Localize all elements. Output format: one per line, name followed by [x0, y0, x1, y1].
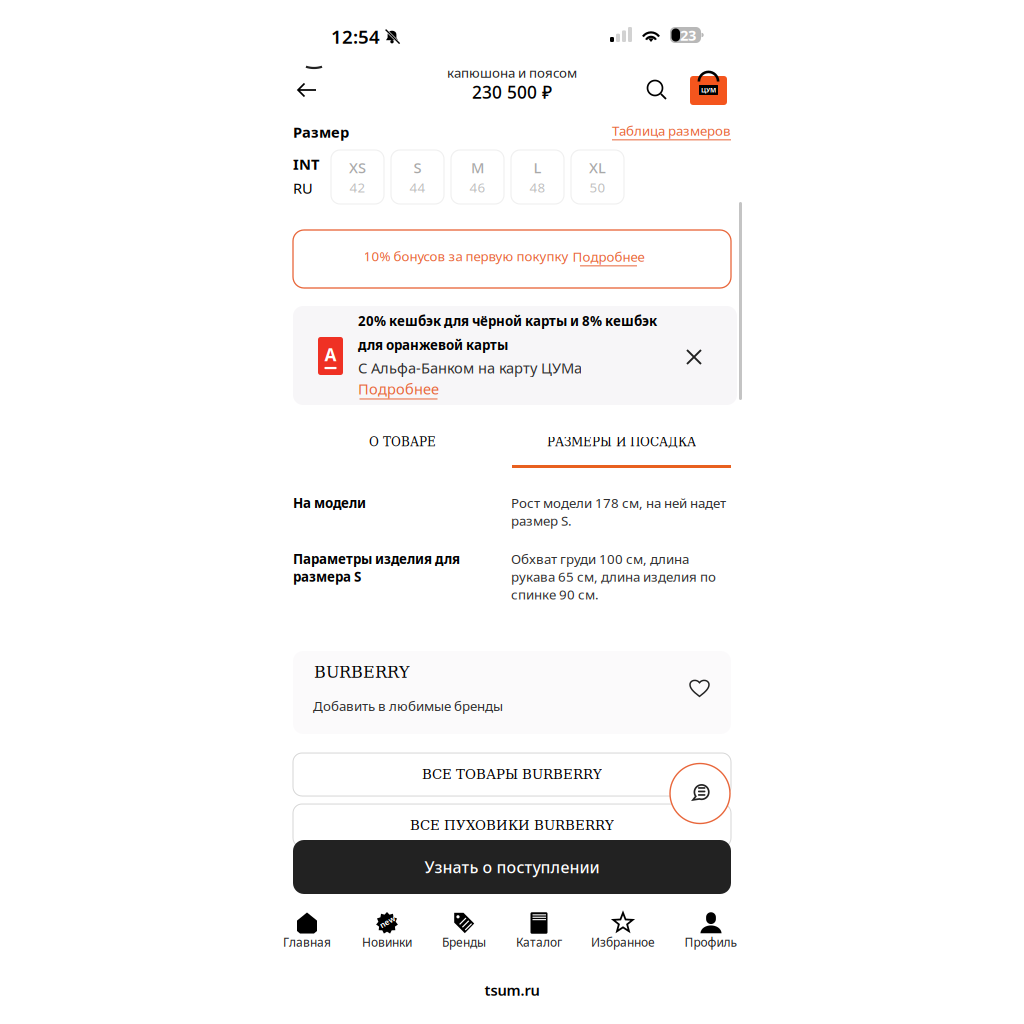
button[interactable]: Профиль — [671, 912, 751, 954]
staticText: 50 — [589, 178, 605, 196]
button[interactable]: Подробнее — [358, 379, 439, 399]
button[interactable]: Close banner — [676, 339, 712, 375]
staticText: Таблица размеров — [612, 122, 731, 139]
staticText: 12:54 — [331, 24, 380, 49]
button[interactable]: РАЗМЕРЫ И ПОСАДКА — [512, 425, 731, 459]
staticText: 230 500 ₽ — [472, 80, 552, 103]
staticText: Размер — [293, 122, 349, 142]
staticText: 46 — [469, 178, 485, 196]
button[interactable]: Back — [285, 72, 329, 108]
staticText: 48 — [529, 178, 545, 196]
staticText: капюшона и поясом — [447, 64, 577, 81]
button[interactable]: Узнать о поступлении — [293, 840, 731, 894]
staticText: INT — [293, 154, 319, 174]
button[interactable]: ВСЕ ТОВАРЫ BURBERRY — [293, 753, 731, 796]
button[interactable]: BURBERRY — [293, 651, 731, 734]
staticText: 44 — [409, 178, 425, 196]
staticText: О ТОВАРЕ — [369, 435, 436, 449]
staticText: 23 — [680, 25, 696, 45]
button[interactable]: Chat with support — [670, 763, 730, 824]
staticText: L — [533, 158, 541, 177]
button[interactable]: L — [511, 150, 564, 204]
button[interactable]: Каталог — [499, 912, 579, 954]
staticText: Обхват груди 100 см, длина рукава 65 см,… — [511, 550, 716, 603]
button[interactable]: Главная — [267, 912, 347, 954]
staticText: Избранное — [591, 934, 655, 950]
staticText: Профиль — [684, 934, 737, 950]
staticText: Рост модели 178 см, на ней надет размер … — [511, 494, 726, 529]
staticText: 10% бонусов за первую покупку — [363, 247, 568, 265]
button[interactable]: Бренды — [424, 912, 504, 954]
staticText: S — [413, 158, 421, 177]
staticText: 20% кешбэк для чёрной карты и 8% кешбэк — [358, 312, 657, 330]
staticText: ВСЕ ПУХОВИКИ BURBERRY — [410, 818, 614, 833]
button[interactable]: Таблица размеров — [612, 122, 731, 140]
button[interactable]: M — [451, 150, 504, 204]
button[interactable]: Search — [638, 72, 676, 108]
staticText: new — [379, 916, 396, 927]
staticText: XS — [349, 158, 366, 177]
staticText: Бренды — [442, 934, 486, 950]
button[interactable]: О ТОВАРЕ — [293, 425, 512, 459]
button[interactable]: Cart — [690, 63, 730, 107]
staticText: РАЗМЕРЫ И ПОСАДКА — [547, 435, 696, 449]
button[interactable]: XS — [331, 150, 384, 204]
staticText: A — [324, 343, 336, 366]
staticText: RU — [293, 178, 313, 198]
staticText: Подробнее — [572, 248, 644, 265]
staticText: для оранжевой карты — [358, 336, 508, 354]
button[interactable]: XL — [571, 150, 624, 204]
staticText: ВСЕ ТОВАРЫ BURBERRY — [422, 767, 602, 782]
staticText: Параметры изделия для размера S — [293, 550, 460, 585]
button[interactable]: ВСЕ ПУХОВИКИ BURBERRY — [293, 804, 731, 847]
staticText: Добавить в любимые бренды — [313, 697, 503, 715]
staticText: С Альфа-Банком на карту ЦУМа — [358, 358, 582, 377]
staticText: Главная — [283, 934, 331, 950]
staticText: ЦУМ — [701, 86, 716, 94]
staticText: Каталог — [516, 934, 562, 950]
button[interactable]: new — [347, 912, 427, 954]
staticText: tsum.ru — [484, 980, 539, 1000]
staticText: На модели — [293, 494, 366, 512]
staticText: M — [471, 158, 484, 177]
staticText: XL — [589, 158, 606, 177]
button[interactable]: 10% бонусов за первую покупку — [293, 230, 731, 288]
staticText: Новинки — [362, 934, 412, 950]
staticText: BURBERRY — [314, 663, 410, 682]
staticText: Узнать о поступлении — [424, 856, 599, 878]
button[interactable]: Избранное — [583, 912, 663, 954]
button[interactable]: S — [391, 150, 444, 204]
staticText: Подробнее — [358, 379, 439, 398]
staticText: 42 — [349, 178, 365, 196]
